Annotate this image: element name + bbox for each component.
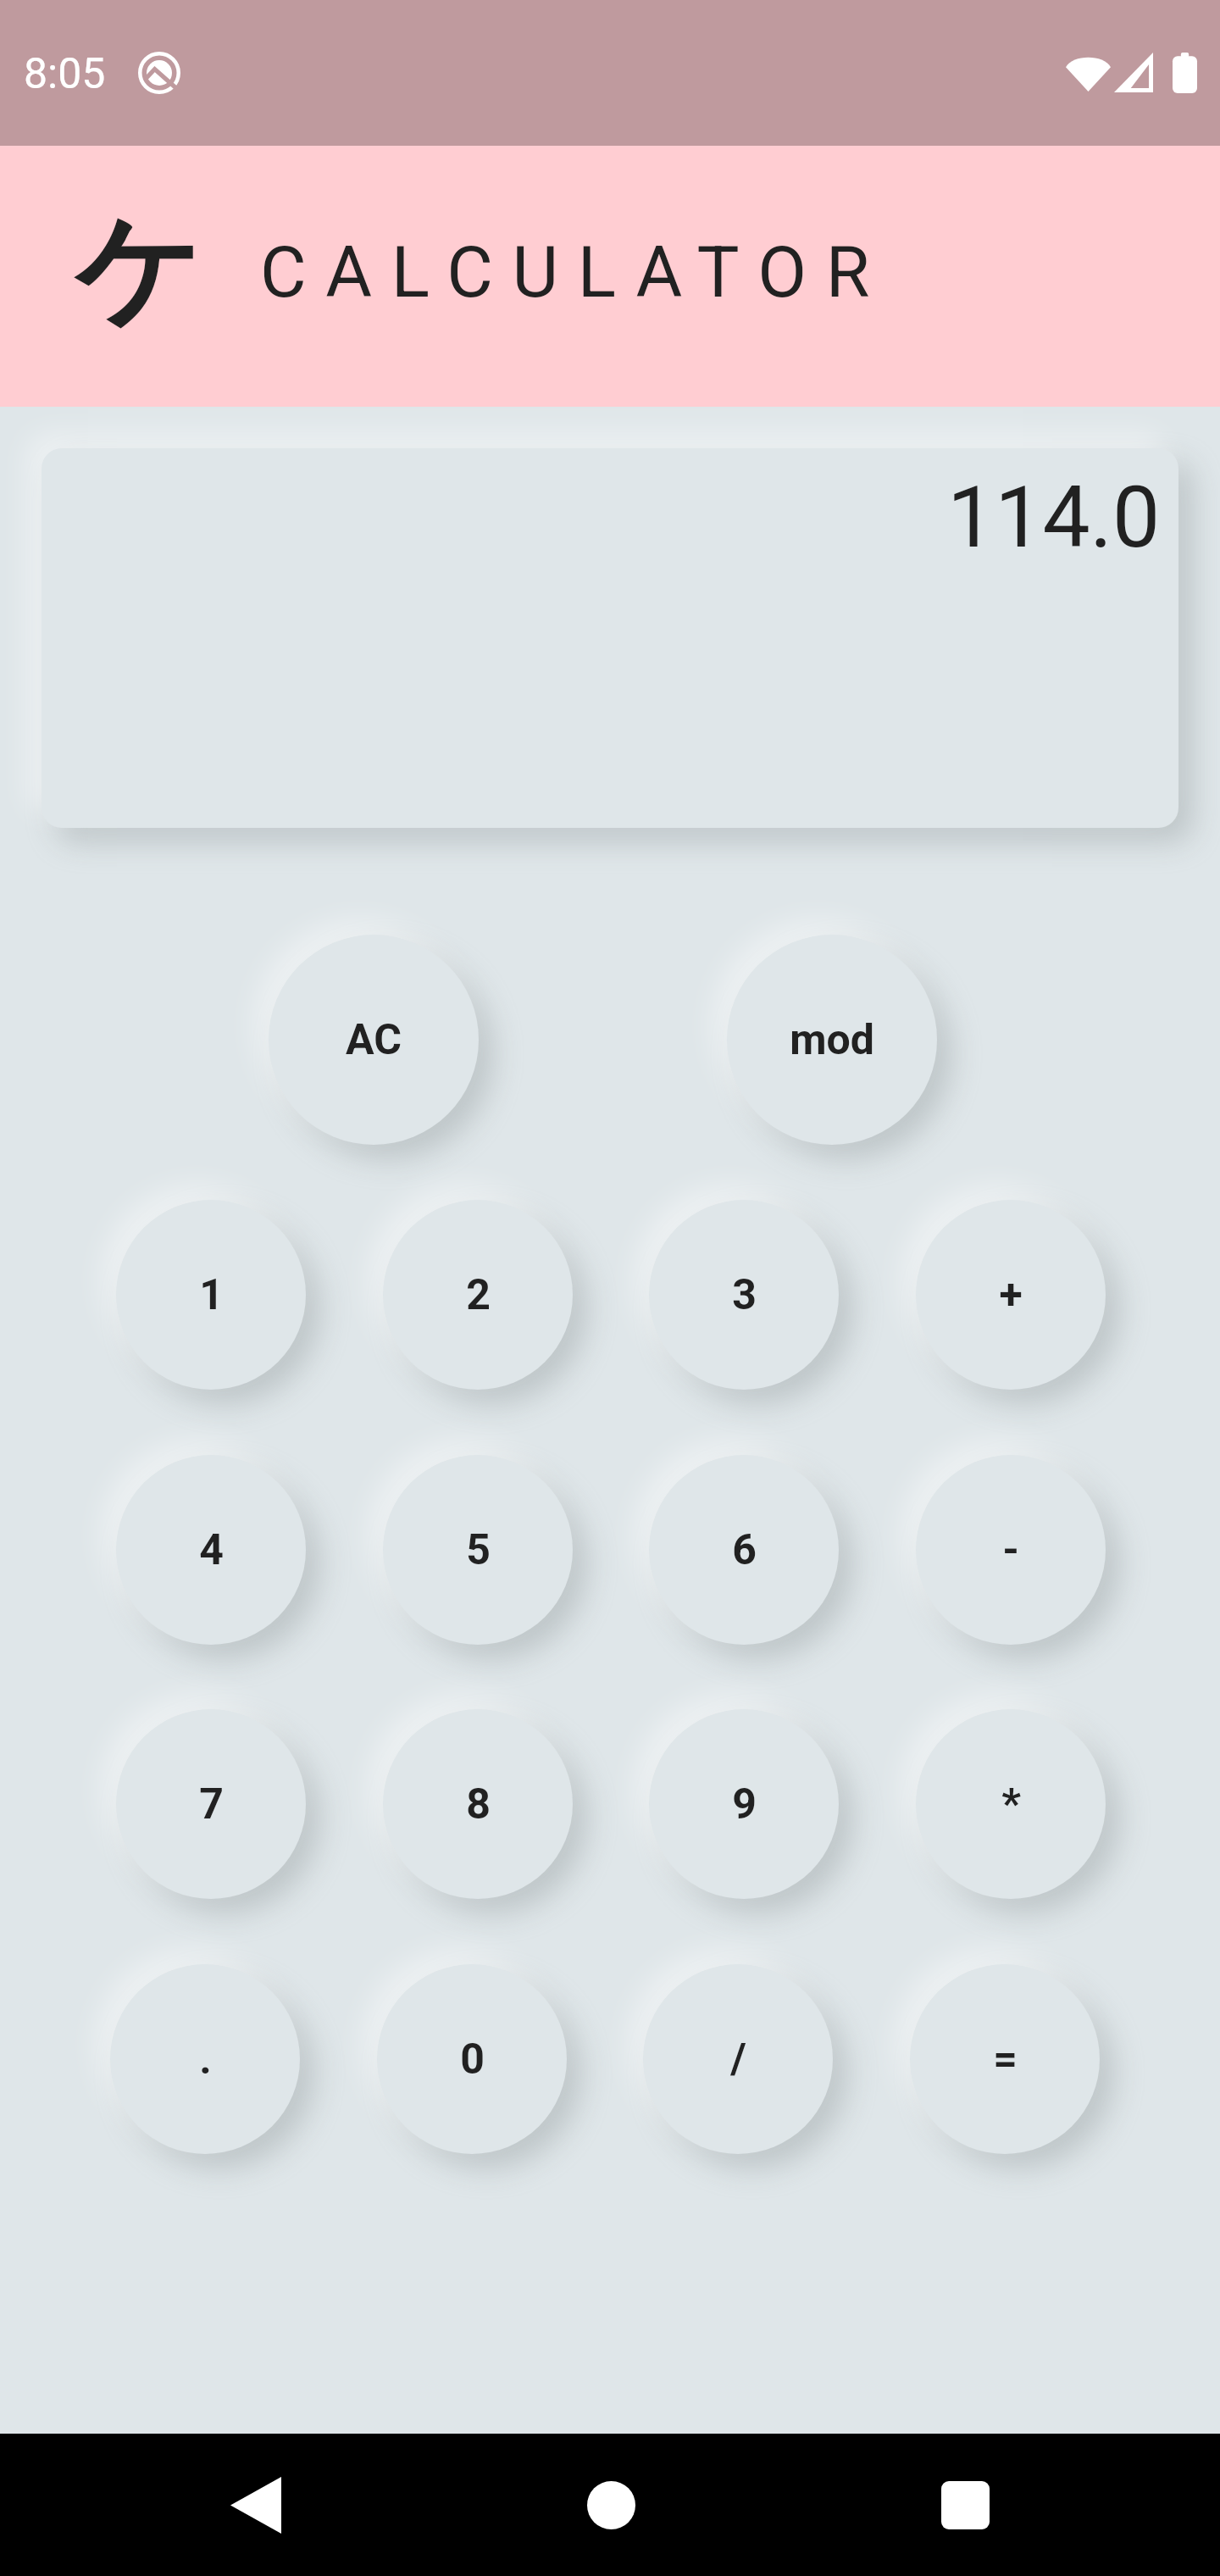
staticText: 114.0 bbox=[947, 468, 1161, 567]
staticText: 1 bbox=[199, 1270, 224, 1320]
button[interactable]: 4 bbox=[116, 1455, 306, 1645]
staticText: 6 bbox=[732, 1525, 757, 1575]
button[interactable]: Back bbox=[180, 2434, 332, 2576]
staticText: 5 bbox=[466, 1525, 491, 1575]
staticText: + bbox=[999, 1270, 1023, 1320]
button[interactable]: 3 bbox=[649, 1200, 839, 1390]
button[interactable]: - bbox=[916, 1455, 1106, 1645]
staticText: 0 bbox=[460, 2035, 485, 2085]
staticText: mod bbox=[790, 1015, 874, 1065]
staticText: * bbox=[1001, 1779, 1021, 1829]
button[interactable]: 0 bbox=[377, 1964, 567, 2154]
staticText: 4 bbox=[199, 1525, 224, 1575]
button[interactable]: AC bbox=[269, 935, 479, 1145]
button[interactable]: Recent apps bbox=[889, 2434, 1041, 2576]
button[interactable]: Home bbox=[535, 2434, 687, 2576]
button[interactable]: mod bbox=[727, 935, 937, 1145]
staticText: 7 bbox=[199, 1779, 224, 1829]
button[interactable]: 7 bbox=[116, 1709, 306, 1899]
staticText: 8:05 bbox=[24, 49, 106, 99]
staticText: 8 bbox=[466, 1779, 491, 1829]
staticText: 9 bbox=[732, 1779, 757, 1829]
button[interactable]: . bbox=[110, 1964, 300, 2154]
staticText: = bbox=[993, 2035, 1018, 2085]
button[interactable]: 5 bbox=[383, 1455, 573, 1645]
staticText: AC bbox=[346, 1015, 402, 1065]
staticText: ケ bbox=[75, 193, 202, 349]
button[interactable]: 1 bbox=[116, 1200, 306, 1390]
staticText: - bbox=[1002, 1525, 1019, 1575]
button[interactable]: 6 bbox=[649, 1455, 839, 1645]
staticText: . bbox=[199, 2035, 212, 2085]
staticText: CALCULATOR bbox=[260, 230, 890, 314]
button[interactable]: 9 bbox=[649, 1709, 839, 1899]
staticText: 2 bbox=[466, 1270, 491, 1320]
button[interactable]: * bbox=[916, 1709, 1106, 1899]
button[interactable]: + bbox=[916, 1200, 1106, 1390]
button[interactable]: 2 bbox=[383, 1200, 573, 1390]
staticText: / bbox=[730, 2035, 746, 2085]
button[interactable]: 8 bbox=[383, 1709, 573, 1899]
button[interactable]: = bbox=[910, 1964, 1100, 2154]
button[interactable]: / bbox=[643, 1964, 833, 2154]
staticText: 3 bbox=[732, 1270, 757, 1320]
